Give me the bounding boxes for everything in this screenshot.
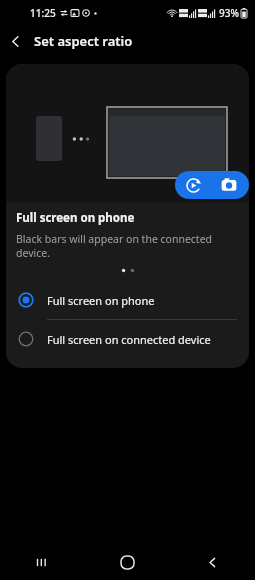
- button[interactable]: Capture screenshot: [211, 171, 247, 199]
- staticText: 11:25: [30, 6, 56, 20]
- button[interactable]: Recent apps: [0, 544, 85, 580]
- staticText: Full screen on phone: [47, 293, 155, 308]
- button[interactable]: Full screen on connected device: [6, 320, 249, 358]
- button[interactable]: Back: [0, 26, 30, 56]
- button[interactable]: Home: [85, 544, 170, 580]
- button[interactable]: Rotate preview: [175, 171, 211, 199]
- staticText: Full screen on connected device: [47, 332, 211, 347]
- button[interactable]: Full screen on phone: [6, 281, 249, 319]
- staticText: Full screen on phone: [16, 210, 135, 226]
- button[interactable]: Back: [170, 544, 255, 580]
- staticText: 93%: [219, 6, 239, 20]
- staticText: Black bars will appear on the connected …: [16, 232, 213, 260]
- staticText: Set aspect ratio: [34, 32, 133, 50]
